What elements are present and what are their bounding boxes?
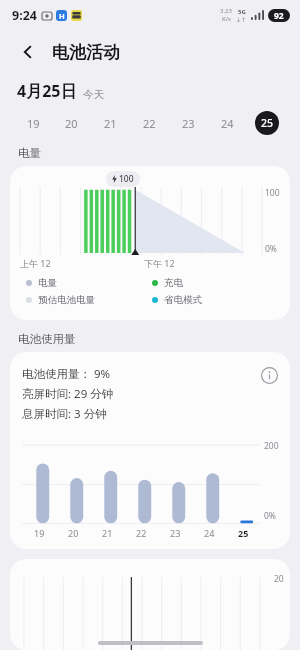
staticText: 19: [27, 116, 40, 131]
button[interactable]: 25: [247, 106, 286, 140]
staticText: 4月25日: [17, 80, 77, 102]
staticText: 24: [204, 527, 215, 539]
staticText: 预估电池电量: [38, 294, 95, 306]
staticText: 22: [136, 527, 147, 539]
staticText: K/s: [222, 15, 231, 23]
staticText: 3.23: [220, 7, 232, 15]
staticText: 电池活动: [52, 42, 120, 63]
staticText: 0%: [265, 243, 277, 255]
staticText: 省电模式: [164, 294, 202, 306]
button[interactable]: 22: [130, 106, 169, 140]
button[interactable]: 24: [208, 106, 247, 140]
staticText: 23: [182, 116, 195, 131]
staticText: 25: [261, 116, 274, 130]
button[interactable]: 信息: [258, 364, 280, 386]
staticText: 电池使用量： 9%: [22, 366, 111, 382]
staticText: 24: [221, 116, 234, 131]
button[interactable]: 电池使用量： 9%: [10, 352, 290, 549]
staticText: 电量: [38, 277, 57, 289]
staticText: 0%: [264, 510, 276, 522]
staticText: 21: [102, 527, 113, 539]
button[interactable]: 19: [14, 106, 52, 140]
staticText: 亮屏时间: 29 分钟: [22, 386, 114, 402]
staticText: 21: [104, 116, 117, 131]
staticText: 9:24: [12, 7, 37, 24]
staticText: H: [59, 11, 65, 21]
staticText: 25: [238, 527, 249, 539]
staticText: 19: [34, 527, 45, 539]
button[interactable]: 23: [169, 106, 208, 140]
staticText: 92: [274, 10, 284, 22]
staticText: 充电: [164, 277, 183, 289]
staticText: 息屏时间: 3 分钟: [22, 406, 107, 422]
staticText: 电池使用量: [18, 332, 76, 346]
staticText: 20: [65, 116, 78, 131]
button[interactable]: 20: [10, 559, 290, 650]
staticText: 200: [264, 440, 279, 452]
staticText: 100: [119, 173, 134, 185]
staticText: 下午 12: [144, 257, 175, 269]
button[interactable]: 返回: [12, 36, 44, 68]
staticText: ↓↑: [236, 16, 247, 23]
staticText: 100: [265, 187, 280, 199]
button[interactable]: 100: [10, 166, 290, 320]
button[interactable]: 20: [52, 106, 91, 140]
staticText: 20: [274, 573, 284, 585]
staticText: 22: [143, 116, 156, 131]
staticText: 20: [68, 527, 79, 539]
staticText: 今天: [83, 88, 104, 101]
staticText: 上午 12: [20, 257, 51, 269]
button[interactable]: 21: [91, 106, 130, 140]
staticText: 23: [170, 527, 181, 539]
staticText: 电量: [18, 146, 41, 160]
staticText: 5G: [238, 8, 246, 16]
